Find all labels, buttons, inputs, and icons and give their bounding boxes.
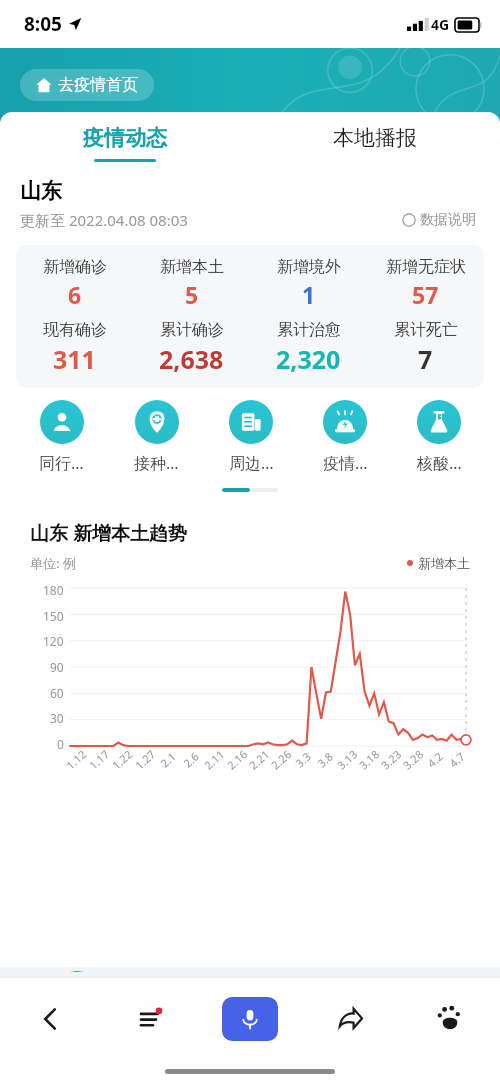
staticText: 150 <box>43 608 64 624</box>
staticText: 2.26 <box>268 747 294 772</box>
staticText: 新增确诊 <box>43 257 107 277</box>
button[interactable]: Share <box>300 978 400 1060</box>
staticText: 累计治愈 <box>277 320 341 340</box>
button[interactable]: 周边… <box>204 400 298 474</box>
button[interactable]: 累计确诊 <box>133 320 250 376</box>
button[interactable]: 新增境外 <box>250 257 367 310</box>
staticText: 新增本土 <box>418 555 470 571</box>
button[interactable]: 新增无症状 <box>367 257 484 310</box>
staticText: 接种… <box>134 452 179 474</box>
staticText: 2.1 <box>157 749 179 770</box>
staticText: 60 <box>50 685 64 701</box>
staticText: 新增境外 <box>277 257 341 277</box>
staticText: 57 <box>412 279 439 310</box>
staticText: 累计确诊 <box>160 320 224 340</box>
staticText: 180 <box>43 582 64 598</box>
other: 同行… <box>40 400 84 444</box>
other: 核酸… <box>417 400 461 444</box>
staticText: 山东 新增本土趋势 <box>30 520 187 546</box>
staticText: 30 <box>50 710 64 726</box>
staticText: 3.8 <box>314 749 336 770</box>
button[interactable]: 数据说明 <box>398 207 480 233</box>
other: 接种… <box>135 400 179 444</box>
staticText: 数据说明 <box>420 211 476 229</box>
staticText: 90 <box>50 659 64 675</box>
other: 周边… <box>229 400 273 444</box>
staticText: 疫情动态 <box>83 125 167 151</box>
staticText: 5 <box>185 279 199 310</box>
button[interactable]: 疫情动态 <box>0 112 250 174</box>
staticText: 6 <box>68 279 82 310</box>
staticText: 累计死亡 <box>394 320 458 340</box>
staticText: 120 <box>43 633 64 649</box>
button[interactable]: 同行… <box>14 400 109 474</box>
button[interactable]: 新增确诊 <box>16 257 133 310</box>
staticText: 7 <box>418 342 433 376</box>
staticText: 1.12 <box>63 747 89 772</box>
staticText: 2,638 <box>159 342 224 376</box>
button[interactable]: 去疫情首页 <box>20 69 154 101</box>
button[interactable]: Back <box>0 978 100 1060</box>
staticText: 2.16 <box>224 747 250 772</box>
staticText: 2.6 <box>180 749 202 770</box>
staticText: 1.27 <box>132 747 158 772</box>
button[interactable]: Baidu home <box>400 978 500 1060</box>
staticText: 4G <box>431 15 450 34</box>
staticText: 现有确诊 <box>43 320 107 340</box>
staticText: 4.7 <box>446 749 468 770</box>
staticText: 1.22 <box>109 747 135 772</box>
staticText: 本地播报 <box>333 125 417 151</box>
staticText: 2,320 <box>276 342 341 376</box>
button[interactable]: 核酸… <box>392 400 486 474</box>
staticText: 4.2 <box>424 749 446 770</box>
staticText: 疫情… <box>323 452 368 474</box>
other: 疫情… <box>323 400 367 444</box>
staticText: 新增本土 <box>160 257 224 277</box>
button[interactable]: 新增本土 <box>133 257 250 310</box>
button[interactable]: 本地播报 <box>250 112 500 174</box>
button[interactable]: Menu <box>100 978 200 1060</box>
staticText: 周边… <box>229 452 274 474</box>
staticText: 2.21 <box>246 747 272 772</box>
staticText: 3.23 <box>378 747 404 772</box>
staticText: 核酸… <box>417 452 462 474</box>
staticText: 更新至 2022.04.08 08:03 <box>20 210 188 230</box>
staticText: 新增无症状 <box>386 257 466 277</box>
staticText: 山东 <box>20 178 62 204</box>
button[interactable]: 累计死亡 <box>367 320 484 376</box>
staticText: 2.11 <box>201 747 227 772</box>
staticText: 8:05 <box>24 11 62 37</box>
staticText: 去疫情首页 <box>58 75 138 95</box>
staticText: 1 <box>302 279 316 310</box>
staticText: 3.13 <box>334 747 360 772</box>
staticText: 3.28 <box>400 747 426 772</box>
staticText: 1.17 <box>86 747 112 772</box>
button[interactable]: 疫情… <box>298 400 392 474</box>
staticText: 3.18 <box>356 747 382 772</box>
staticText: 311 <box>53 342 96 376</box>
button[interactable]: 接种… <box>109 400 204 474</box>
staticText: 同行… <box>39 452 84 474</box>
button[interactable]: 现有确诊 <box>16 320 133 376</box>
staticText: 3.3 <box>292 749 314 770</box>
button[interactable]: 累计治愈 <box>250 320 367 376</box>
staticText: 单位: 例 <box>30 554 76 572</box>
button[interactable]: Voice search <box>222 997 278 1041</box>
staticText: 0 <box>57 736 64 752</box>
